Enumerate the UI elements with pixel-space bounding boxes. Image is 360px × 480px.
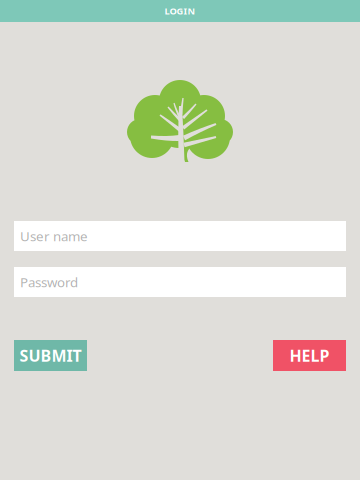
staticText: HELP — [289, 345, 329, 366]
staticText: Password — [20, 273, 78, 291]
staticText: SUBMIT — [19, 345, 81, 366]
button[interactable]: SUBMIT — [14, 340, 87, 371]
button[interactable]: HELP — [273, 340, 346, 371]
staticText: LOGIN — [164, 5, 195, 17]
staticText: User name — [20, 227, 88, 245]
